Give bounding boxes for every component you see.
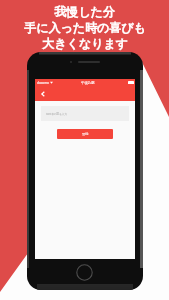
staticText: 我慢した分: [54, 4, 115, 19]
button[interactable]: 招待者のIDを入力: [41, 106, 129, 121]
staticText: 招待者のIDを入力: [46, 112, 68, 116]
staticText: 午後2:48: [81, 80, 95, 85]
staticText: docomo: [37, 81, 49, 85]
staticText: 大きくなります: [42, 36, 128, 51]
button[interactable]: Back: [37, 88, 48, 99]
staticText: 手に入った時の喜びも: [24, 20, 146, 35]
button[interactable]: 登録: [57, 129, 113, 139]
staticText: 登録: [82, 132, 89, 136]
